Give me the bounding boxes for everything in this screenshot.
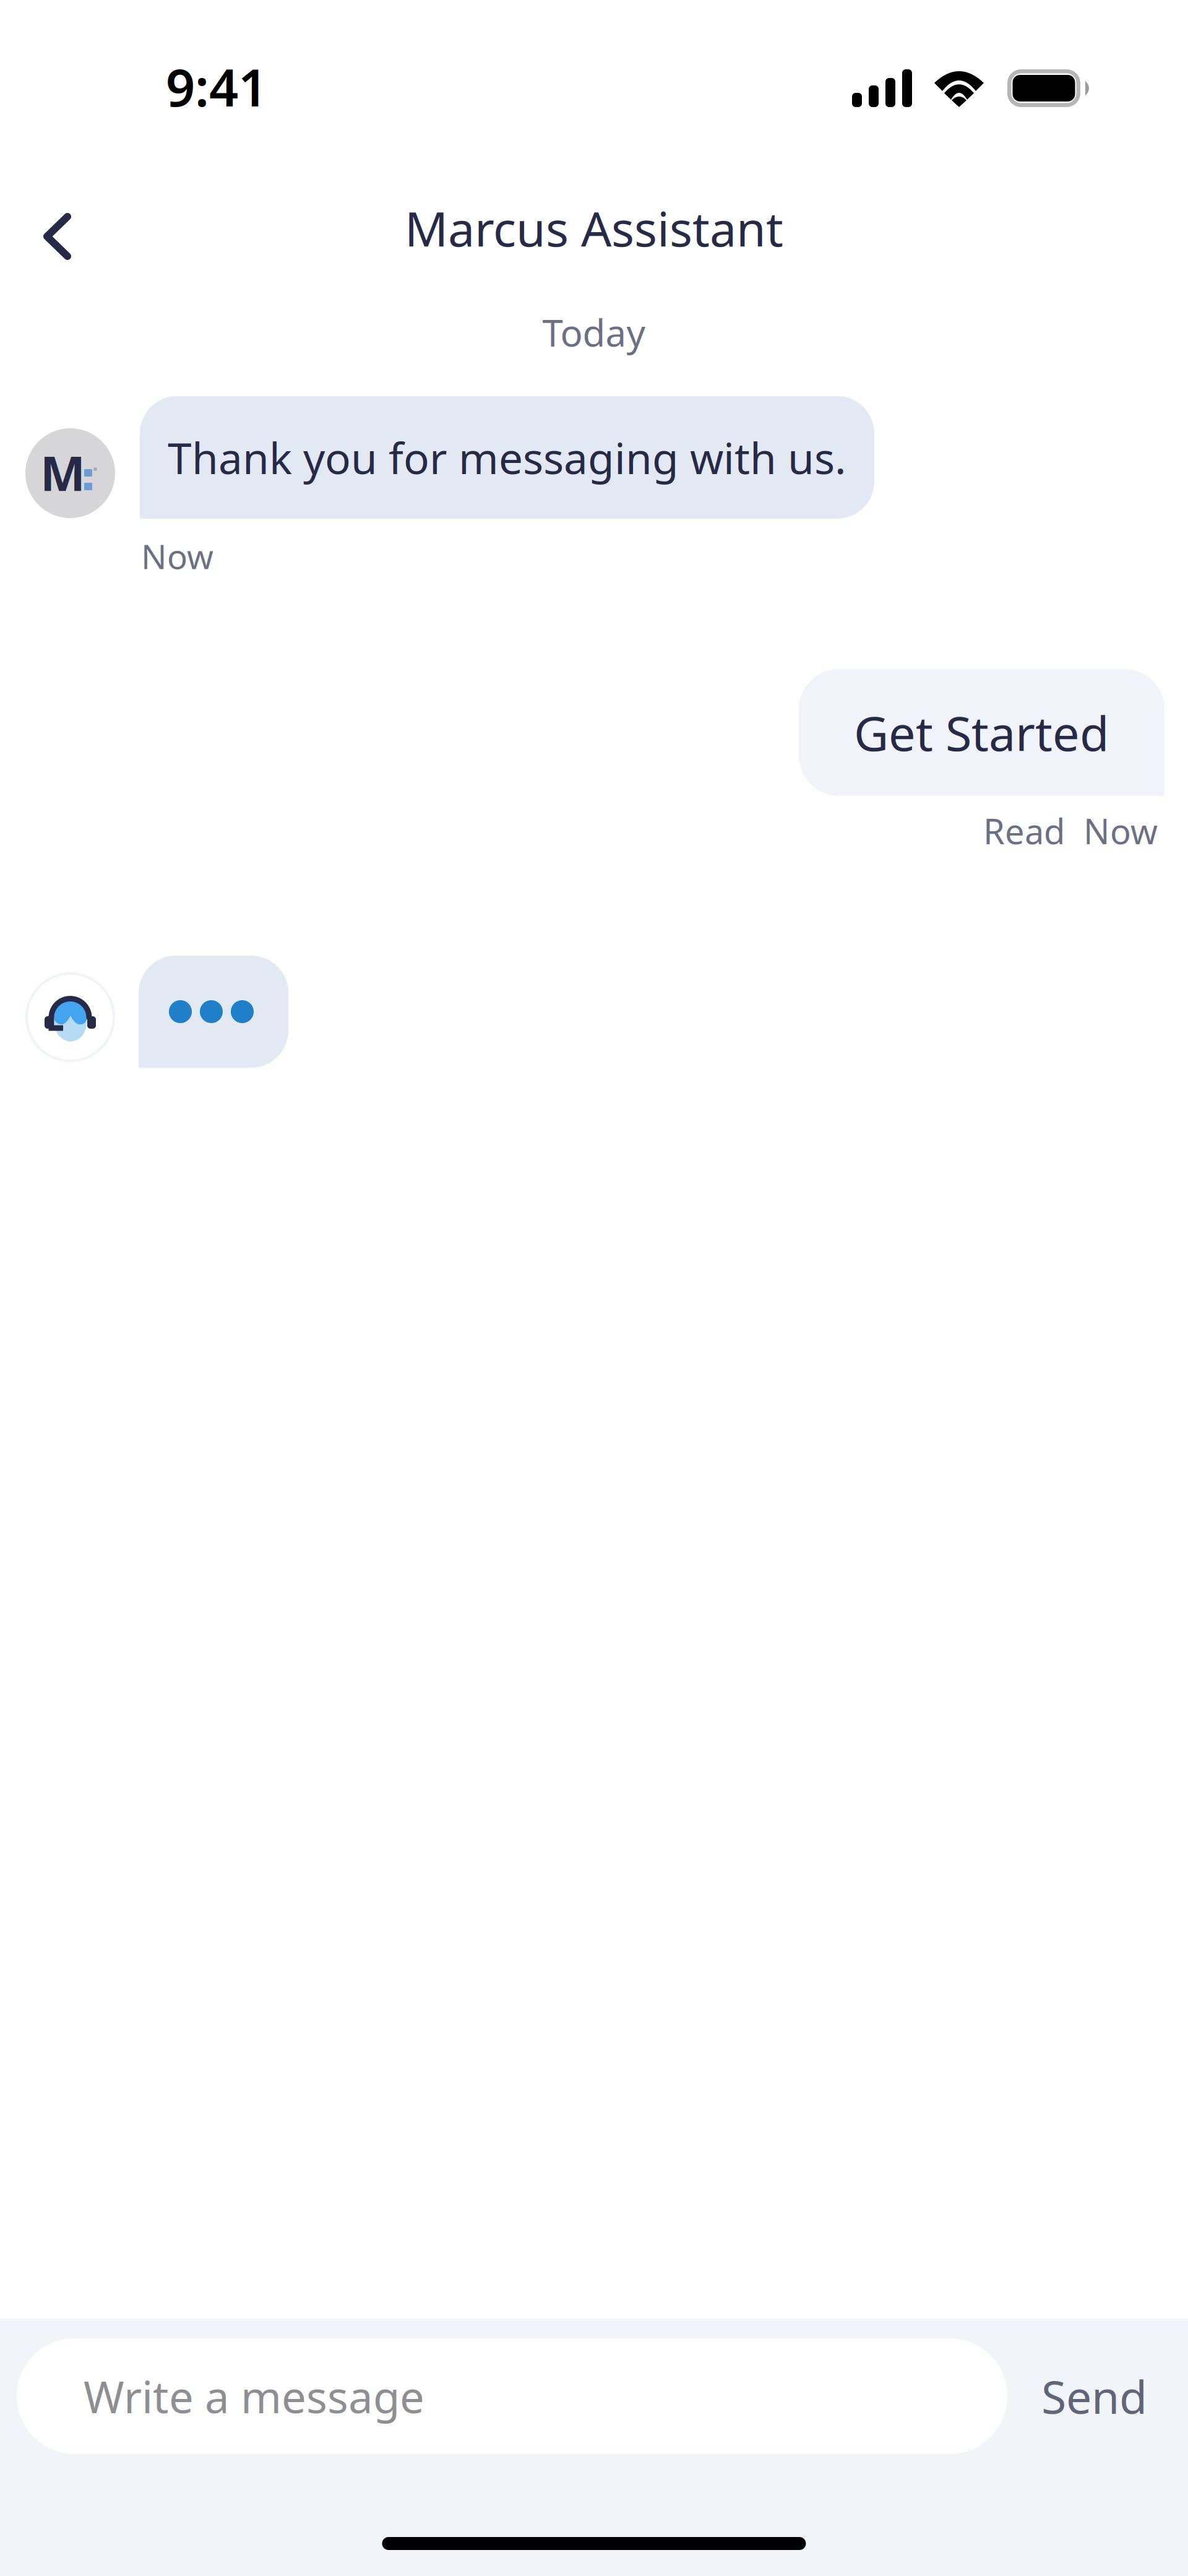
button[interactable]: Back bbox=[9, 186, 106, 287]
button[interactable]: Send bbox=[1022, 2347, 1167, 2445]
staticText: Now bbox=[141, 534, 213, 578]
staticText: Thank you for messaging with us. bbox=[168, 429, 846, 486]
staticText: 9:41 bbox=[166, 53, 267, 121]
button[interactable]: Write a message bbox=[17, 2338, 1007, 2454]
staticText: Read Now bbox=[983, 808, 1158, 854]
staticText: Send bbox=[1041, 2366, 1147, 2426]
staticText: M bbox=[40, 441, 85, 504]
staticText: Marcus Assistant bbox=[405, 196, 783, 260]
staticText: Write a message bbox=[84, 2367, 424, 2425]
staticText: Get Started bbox=[854, 701, 1109, 764]
staticText: Today bbox=[542, 308, 646, 357]
